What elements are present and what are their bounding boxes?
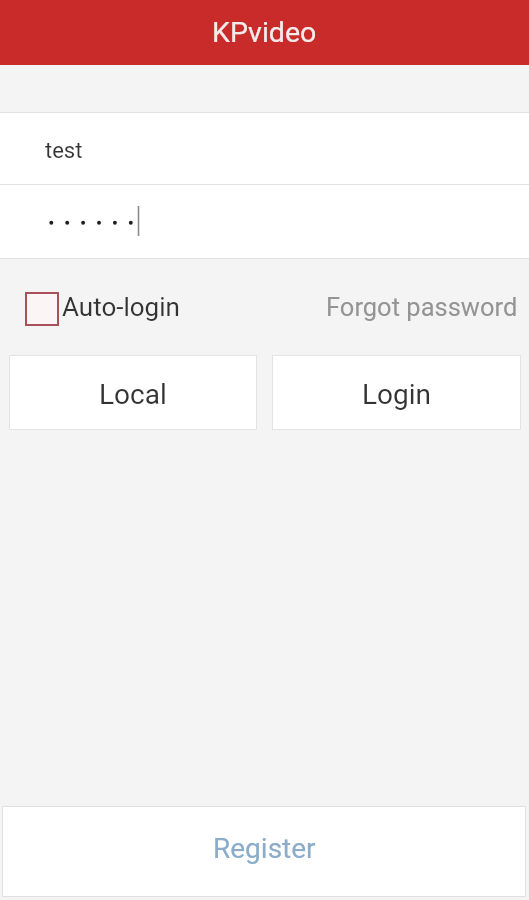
staticText: KPvideo bbox=[212, 16, 317, 49]
staticText: Forgot password bbox=[326, 292, 518, 322]
staticText: Local bbox=[99, 378, 167, 411]
button[interactable]: Local bbox=[9, 355, 257, 430]
button[interactable]: Password bbox=[0, 185, 529, 258]
staticText: Login bbox=[362, 378, 432, 411]
button[interactable]: Register bbox=[2, 806, 526, 897]
button[interactable]: Forgot password bbox=[326, 259, 529, 355]
button[interactable]: test bbox=[0, 113, 529, 184]
button[interactable]: Auto-login bbox=[25, 259, 180, 355]
staticText: Auto-login bbox=[62, 292, 180, 322]
staticText: Register bbox=[213, 832, 316, 865]
staticText: test bbox=[45, 138, 83, 164]
button[interactable]: Login bbox=[272, 355, 521, 430]
